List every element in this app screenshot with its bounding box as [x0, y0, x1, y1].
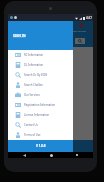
staticText: License Information — [24, 113, 50, 117]
staticText: Terms of Use — [24, 133, 41, 137]
button[interactable]: Recents — [67, 152, 87, 158]
staticText: Registration Information — [24, 103, 56, 107]
staticText: RC Information — [24, 53, 44, 57]
staticText: Search Challan — [24, 83, 43, 87]
button[interactable]: Search Challan — [8, 80, 73, 90]
staticText: Contact Us — [24, 123, 38, 127]
staticText: Our Services — [24, 93, 40, 97]
button[interactable]: Back — [14, 152, 34, 158]
staticText: 4:37 — [86, 16, 92, 20]
button[interactable]: Contact Us — [8, 120, 73, 130]
button[interactable]: SIGN IN — [13, 34, 26, 38]
button[interactable]: Registration Information — [8, 100, 73, 110]
button[interactable]: DL Information — [8, 60, 73, 70]
staticText: DL Information — [24, 63, 44, 67]
staticText: Ministry of Road — [69, 30, 86, 33]
button[interactable]: License Information — [8, 110, 73, 120]
button[interactable]: Our Services — [8, 90, 73, 100]
staticText: Search Dr. By DOB — [24, 73, 47, 77]
button[interactable]: RC Information — [8, 50, 73, 60]
staticText: V 1.0.0 — [36, 144, 46, 148]
button[interactable]: Search Dr. By DOB — [8, 70, 73, 80]
button[interactable]: Home — [41, 152, 61, 158]
button[interactable]: Terms of Use — [8, 130, 73, 140]
